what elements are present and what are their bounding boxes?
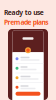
button[interactable] (12, 92, 43, 99)
button[interactable] (12, 64, 43, 73)
staticText: Premade plans (4, 18, 48, 27)
button[interactable] (12, 54, 43, 63)
button[interactable] (12, 73, 43, 82)
staticText: Ready to use (4, 8, 44, 17)
button[interactable] (12, 83, 43, 92)
